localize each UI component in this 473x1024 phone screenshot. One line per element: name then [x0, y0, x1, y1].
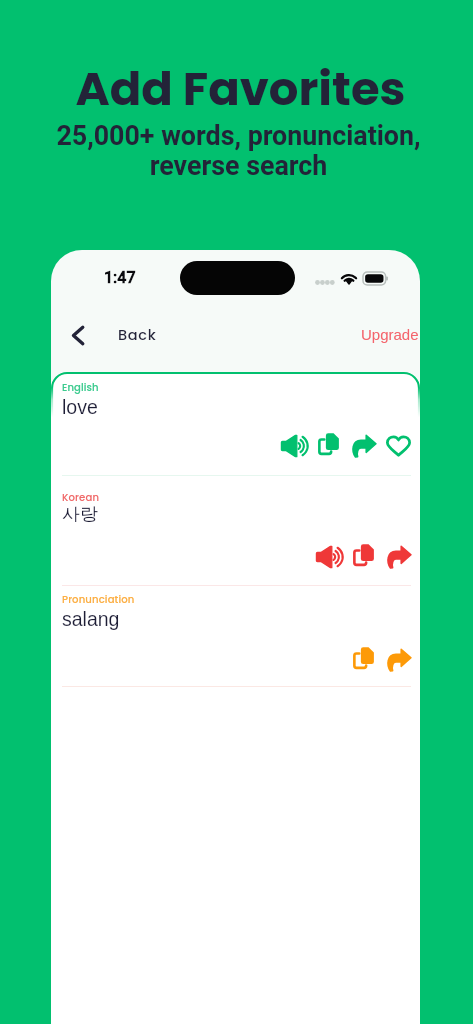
button[interactable]: Copy [353, 546, 374, 568]
staticText: salang [62, 608, 120, 630]
button[interactable]: Listen [281, 435, 310, 457]
button[interactable]: Copy [318, 435, 339, 457]
staticText: Upgrade [361, 326, 419, 343]
button[interactable]: Listen [316, 546, 345, 568]
button[interactable]: Upgrade [353, 318, 420, 351]
staticText: love [62, 396, 98, 418]
staticText: Korean [62, 490, 100, 504]
staticText: 1:47 [104, 268, 136, 287]
button[interactable]: Back [51, 315, 171, 355]
button[interactable]: Share [386, 546, 411, 568]
staticText: Add Favorites [4, 56, 473, 121]
button[interactable]: Share [351, 435, 376, 457]
staticText: English [62, 380, 99, 394]
staticText: 25,000+ words, pronunciation, reverse se… [2, 120, 473, 182]
staticText: Back [118, 325, 157, 345]
button[interactable]: Copy [353, 649, 374, 671]
button[interactable]: Share [386, 649, 411, 671]
staticText: 사랑 [62, 503, 98, 526]
button[interactable]: Favorite [386, 435, 411, 457]
staticText: Pronunciation [62, 592, 135, 606]
